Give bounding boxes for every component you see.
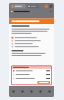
button[interactable]: Bookmarks — [36, 90, 45, 93]
button[interactable]: Tabs — [49, 5, 52, 8]
button[interactable] — [11, 76, 51, 80]
button[interactable] — [11, 73, 51, 76]
button[interactable] — [27, 4, 39, 8]
button[interactable] — [11, 69, 51, 73]
button[interactable]: Tabs — [45, 90, 54, 93]
button[interactable] — [11, 4, 26, 8]
button[interactable]: Back — [9, 90, 18, 93]
button[interactable] — [37, 81, 50, 84]
button[interactable]: Account — [45, 5, 48, 8]
button[interactable]: Forward — [18, 90, 27, 93]
button[interactable]: Share — [27, 90, 36, 93]
